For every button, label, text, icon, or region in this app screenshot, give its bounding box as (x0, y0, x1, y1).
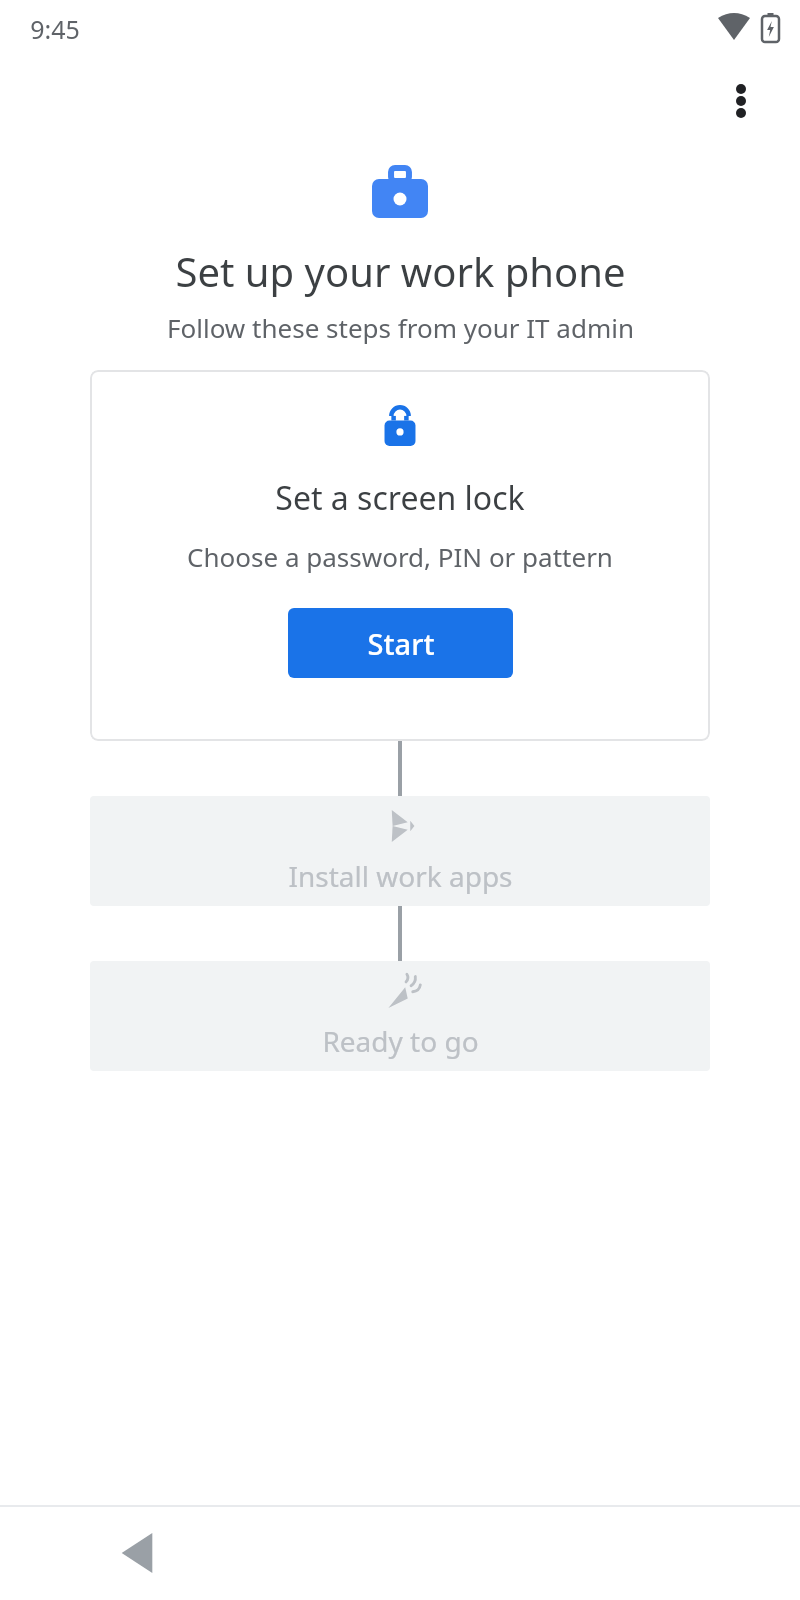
staticText: Install work apps (288, 857, 513, 895)
button[interactable]: Back (120, 1505, 800, 1600)
staticText: Start (367, 624, 435, 663)
staticText: 9:45 (30, 12, 80, 46)
button[interactable]: Install work apps (90, 796, 710, 906)
button[interactable]: More options (712, 72, 770, 130)
staticText: Set a screen lock (275, 476, 525, 520)
button[interactable]: Ready to go (90, 961, 710, 1071)
button[interactable]: Start (288, 608, 513, 678)
staticText: Set up your work phone (175, 244, 626, 298)
button[interactable]: Set a screen lock (90, 370, 710, 741)
staticText: Choose a password, PIN or pattern (187, 539, 613, 574)
staticText: Follow these steps from your IT admin (167, 310, 634, 345)
staticText: Ready to go (322, 1022, 479, 1060)
